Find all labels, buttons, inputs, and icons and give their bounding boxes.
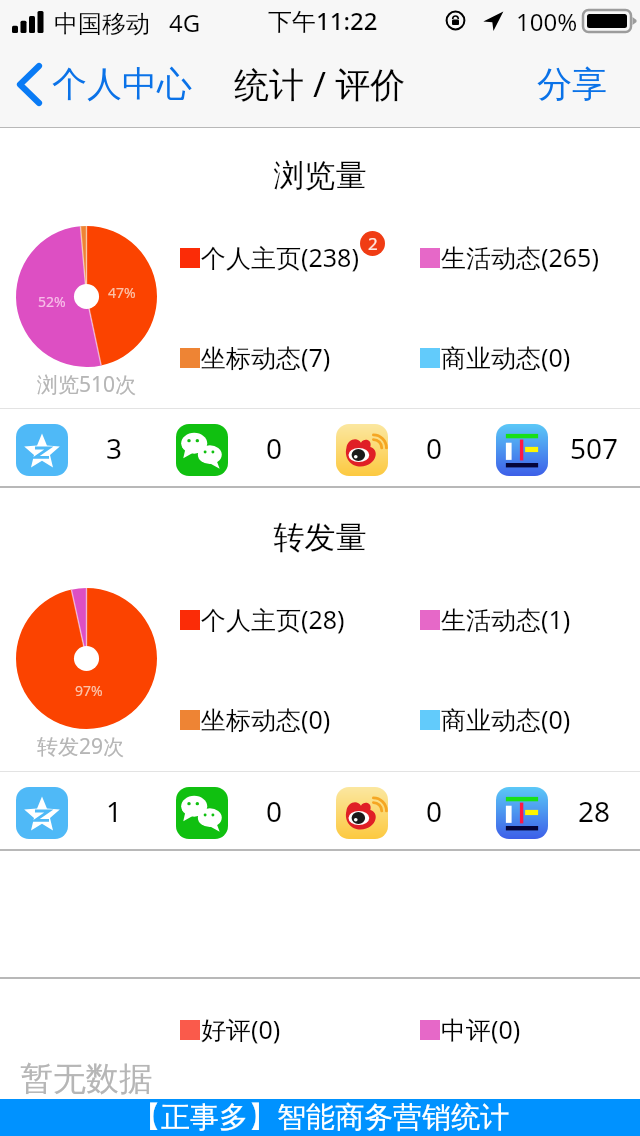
staticText: 2 bbox=[368, 232, 378, 255]
button[interactable]: 507 bbox=[480, 409, 640, 486]
staticText: 统计 / 评价 bbox=[234, 60, 406, 108]
staticText: 坐标动态(0) bbox=[201, 702, 331, 736]
staticText: 转发29次 bbox=[37, 732, 125, 761]
button[interactable]: 商业动态(0) bbox=[420, 341, 571, 375]
staticText: 生活动态(265) bbox=[441, 240, 599, 274]
staticText: 0 bbox=[266, 429, 283, 467]
staticText: 商业动态(0) bbox=[441, 340, 571, 374]
button[interactable]: 3 bbox=[0, 409, 160, 486]
staticText: 28 bbox=[578, 792, 611, 830]
button[interactable]: 【正事多】智能商务营销统计 bbox=[0, 1099, 640, 1136]
staticText: 个人中心 bbox=[52, 62, 192, 106]
staticText: 好评(0) bbox=[201, 1012, 281, 1046]
button[interactable]: 28 bbox=[480, 772, 640, 849]
staticText: 0 bbox=[426, 792, 443, 830]
staticText: 0 bbox=[266, 792, 283, 830]
staticText: 商业动态(0) bbox=[441, 702, 571, 736]
button[interactable]: 返回个人中心 bbox=[0, 62, 206, 106]
staticText: 4G bbox=[169, 6, 201, 39]
staticText: 3 bbox=[106, 429, 123, 467]
button[interactable]: 0 bbox=[160, 772, 320, 849]
button[interactable]: 商业动态(0) bbox=[420, 703, 571, 737]
staticText: 1 bbox=[106, 792, 123, 830]
staticText: 个人主页(238) bbox=[201, 240, 359, 274]
staticText: 浏览量 bbox=[0, 156, 640, 195]
button[interactable]: 分享 bbox=[521, 62, 640, 106]
button[interactable]: 坐标动态(7) bbox=[180, 341, 331, 375]
button[interactable]: 0 bbox=[320, 409, 480, 486]
button[interactable]: 好评(0) bbox=[180, 1013, 281, 1047]
staticText: 100% bbox=[516, 5, 578, 38]
staticText: 中评(0) bbox=[441, 1012, 521, 1046]
staticText: 97% bbox=[75, 681, 103, 700]
button[interactable]: 0 bbox=[320, 772, 480, 849]
staticText: 暂无数据 bbox=[20, 1058, 152, 1100]
staticText: 47% bbox=[108, 283, 136, 302]
staticText: 507 bbox=[570, 429, 619, 467]
staticText: 0 bbox=[426, 429, 443, 467]
button[interactable]: 1 bbox=[0, 772, 160, 849]
staticText: 个人主页(28) bbox=[201, 602, 345, 636]
staticText: 坐标动态(7) bbox=[201, 340, 331, 374]
button[interactable]: 生活动态(265) bbox=[420, 241, 599, 275]
staticText: 浏览510次 bbox=[37, 370, 137, 399]
staticText: 中国移动 bbox=[54, 9, 150, 39]
button[interactable]: 中评(0) bbox=[420, 1013, 521, 1047]
staticText: 分享 bbox=[537, 62, 607, 106]
button[interactable]: 生活动态(1) bbox=[420, 603, 571, 637]
staticText: 52% bbox=[38, 292, 66, 311]
button[interactable]: 0 bbox=[160, 409, 320, 486]
button[interactable]: 坐标动态(0) bbox=[180, 703, 331, 737]
staticText: 下午11:22 bbox=[268, 4, 378, 37]
staticText: 转发量 bbox=[0, 518, 640, 557]
button[interactable]: 个人主页(28) bbox=[180, 603, 345, 637]
button[interactable]: 个人主页(238) bbox=[180, 241, 359, 275]
staticText: 【正事多】智能商务营销统计 bbox=[132, 1099, 509, 1136]
staticText: 生活动态(1) bbox=[441, 602, 571, 636]
